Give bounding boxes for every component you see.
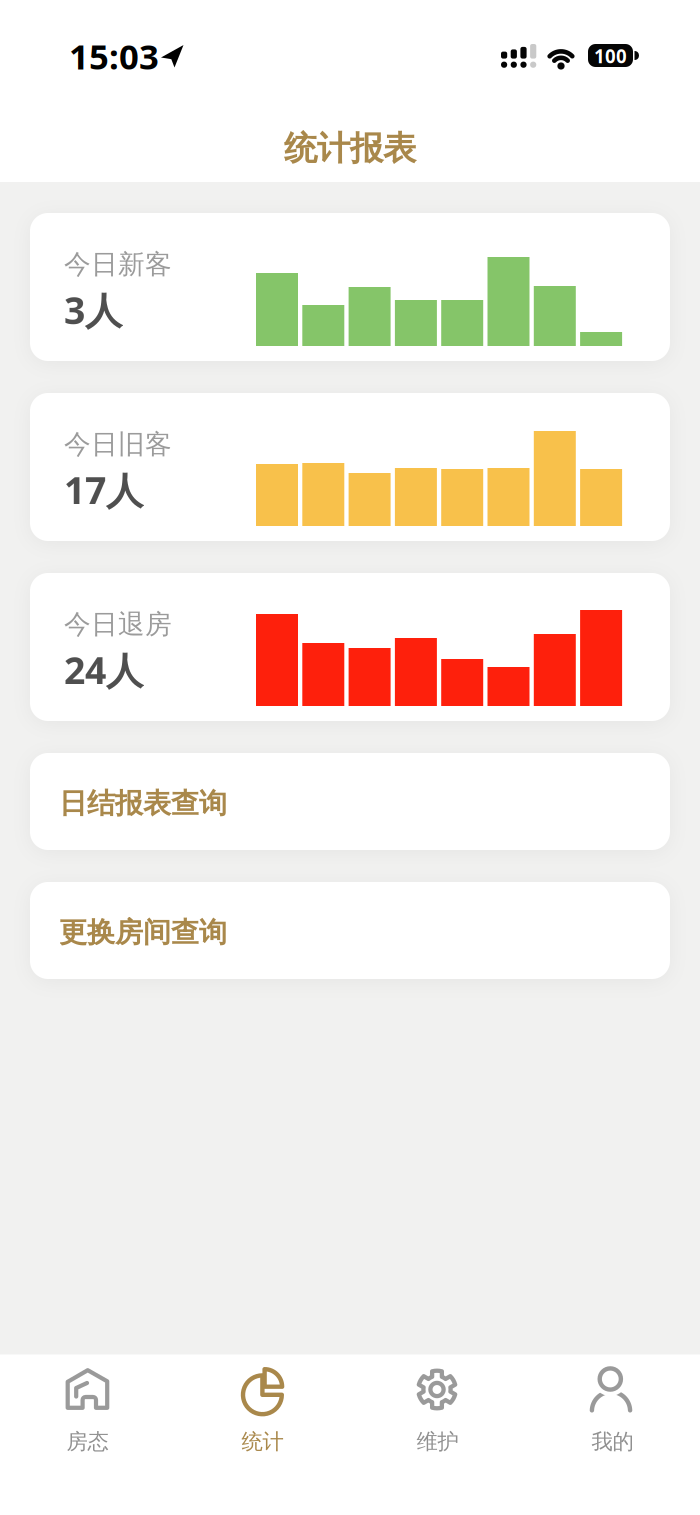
- staticText: 房态: [66, 1428, 108, 1455]
- staticText: 维护: [416, 1428, 458, 1455]
- staticText: 24人: [64, 645, 143, 695]
- button[interactable]: 日结报表查询: [30, 753, 670, 850]
- staticText: 我的: [591, 1428, 633, 1455]
- staticText: 统计: [241, 1428, 283, 1455]
- staticText: 日结报表查询: [59, 786, 227, 821]
- button[interactable]: 房态: [0, 1354, 175, 1515]
- staticText: 100: [594, 44, 627, 68]
- staticText: 今日旧客: [64, 428, 172, 461]
- staticText: 统计报表: [284, 128, 416, 169]
- button[interactable]: 维护: [350, 1354, 525, 1515]
- staticText: 今日新客: [64, 248, 172, 281]
- button[interactable]: 统计: [175, 1354, 350, 1515]
- staticText: 3人: [64, 285, 122, 335]
- button[interactable]: 我的: [525, 1354, 700, 1515]
- staticText: 15:03: [69, 33, 159, 79]
- staticText: 更换房间查询: [59, 915, 227, 950]
- staticText: 17人: [64, 465, 143, 515]
- button[interactable]: 更换房间查询: [30, 882, 670, 979]
- staticText: 今日退房: [64, 608, 172, 641]
